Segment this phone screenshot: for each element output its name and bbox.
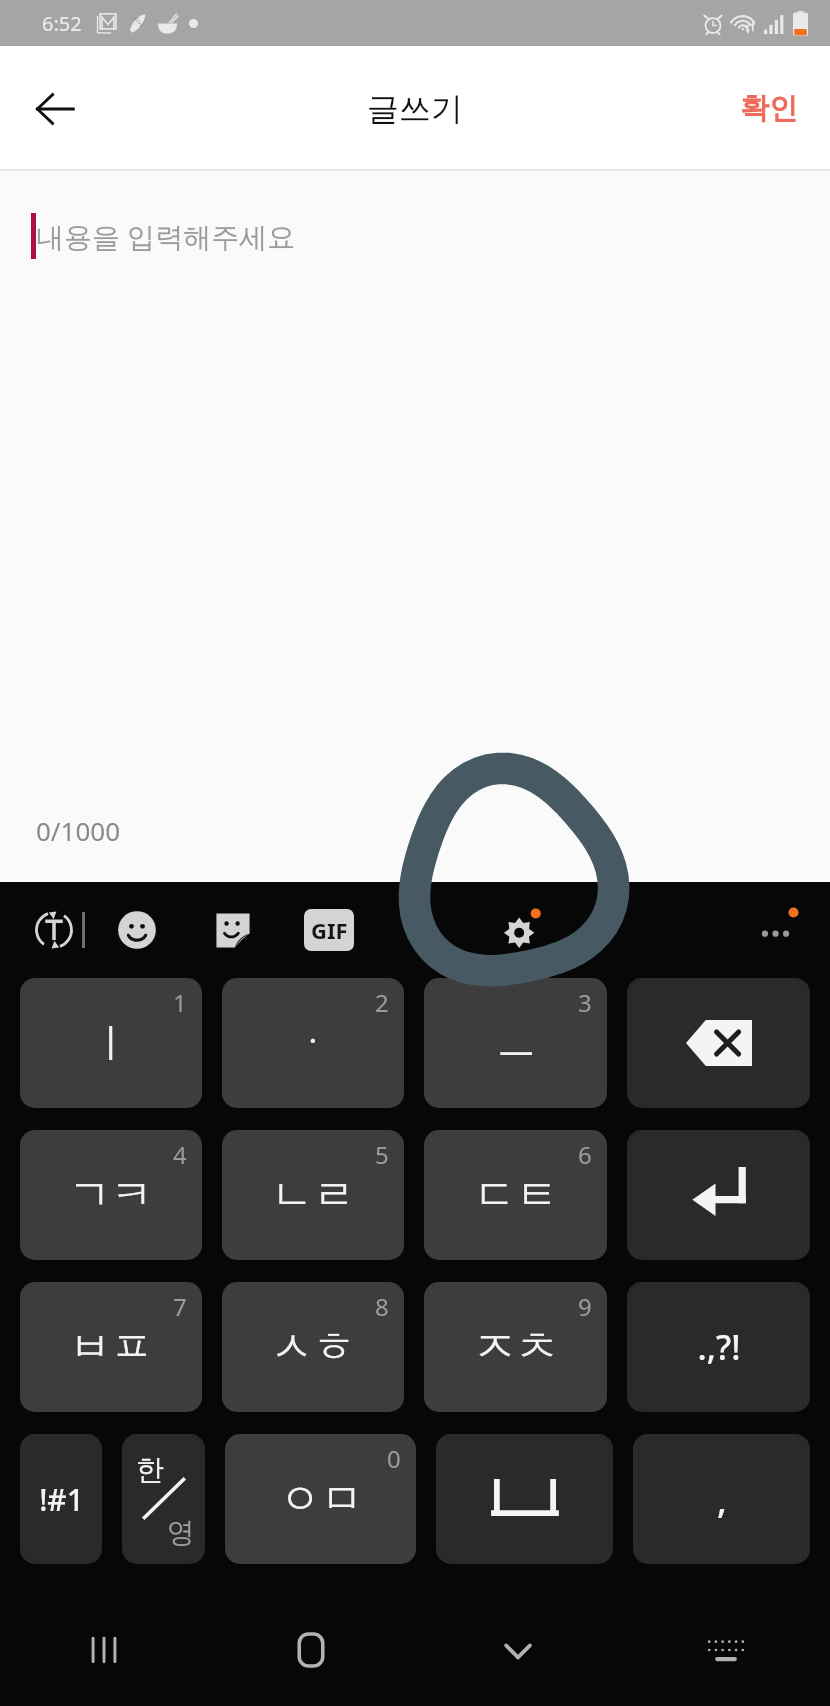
- staticText: 2: [375, 986, 389, 1019]
- button[interactable]: ㄷㅌ: [424, 1130, 607, 1260]
- button[interactable]: 확인: [728, 76, 810, 141]
- staticText: 확인: [740, 90, 798, 127]
- button[interactable]: 내용을 입력해주세요: [0, 171, 830, 882]
- staticText: ㅈㅊ: [474, 1321, 558, 1374]
- staticText: .,?!: [697, 1324, 741, 1370]
- button[interactable]: ㅅㅎ: [222, 1282, 404, 1412]
- staticText: 영: [167, 1515, 195, 1550]
- button[interactable]: Korean English toggle: [122, 1434, 205, 1564]
- button[interactable]: Settings: [493, 902, 549, 958]
- staticText: 4: [173, 1138, 187, 1171]
- button[interactable]: ㅇㅁ: [225, 1434, 416, 1564]
- staticText: 내용을 입력해주세요: [36, 217, 296, 255]
- button[interactable]: ㆍ: [222, 978, 404, 1108]
- staticText: 한: [136, 1452, 164, 1487]
- staticText: 8: [375, 1290, 389, 1323]
- staticText: !#1: [39, 1479, 84, 1520]
- button[interactable]: Back: [18, 72, 92, 146]
- staticText: ㅣ: [91, 1018, 131, 1068]
- staticText: ,: [717, 1475, 727, 1524]
- button[interactable]: ,: [633, 1434, 810, 1564]
- button[interactable]: ㅡ: [424, 978, 607, 1108]
- staticText: ㅡ: [496, 1018, 536, 1068]
- button[interactable]: Space: [436, 1434, 613, 1564]
- button[interactable]: ㅈㅊ: [424, 1282, 607, 1412]
- button[interactable]: Voice input: [397, 902, 453, 958]
- staticText: 1: [173, 986, 187, 1019]
- staticText: ㄷㅌ: [474, 1169, 558, 1222]
- button[interactable]: Translate: [26, 902, 82, 958]
- button[interactable]: Hide keyboard: [414, 1594, 622, 1706]
- button[interactable]: ㅂㅍ: [20, 1282, 202, 1412]
- button[interactable]: .,?!: [627, 1282, 810, 1412]
- button[interactable]: ㅣ: [20, 978, 202, 1108]
- staticText: 3: [578, 986, 592, 1019]
- staticText: 9: [578, 1290, 592, 1323]
- button[interactable]: ㄱㅋ: [20, 1130, 202, 1260]
- staticText: GIF: [311, 915, 348, 945]
- staticText: 5: [375, 1138, 389, 1171]
- button[interactable]: Home: [207, 1594, 414, 1706]
- staticText: ㅂㅍ: [69, 1321, 153, 1374]
- button[interactable]: ㄴㄹ: [222, 1130, 404, 1260]
- button[interactable]: Enter: [627, 1130, 810, 1260]
- button[interactable]: !#1: [20, 1434, 102, 1564]
- staticText: ㅅㅎ: [271, 1321, 355, 1374]
- staticText: ㆍ: [293, 1018, 333, 1068]
- staticText: 0: [387, 1442, 401, 1475]
- button[interactable]: More options: [748, 902, 804, 958]
- staticText: ㄱㅋ: [69, 1169, 153, 1222]
- staticText: 6:52: [42, 10, 82, 37]
- button[interactable]: Stickers: [205, 902, 261, 958]
- button[interactable]: Change keyboard: [622, 1594, 830, 1706]
- staticText: 0/1000: [36, 813, 121, 848]
- button[interactable]: GIF: [301, 902, 357, 958]
- button[interactable]: Backspace: [627, 978, 810, 1108]
- staticText: ㄴㄹ: [271, 1169, 355, 1222]
- staticText: 글쓰기: [367, 89, 463, 129]
- button[interactable]: Emoji: [109, 902, 165, 958]
- staticText: ㅇㅁ: [279, 1473, 363, 1526]
- staticText: 6: [578, 1138, 592, 1171]
- staticText: 7: [173, 1290, 187, 1323]
- button[interactable]: Recent apps: [0, 1594, 207, 1706]
